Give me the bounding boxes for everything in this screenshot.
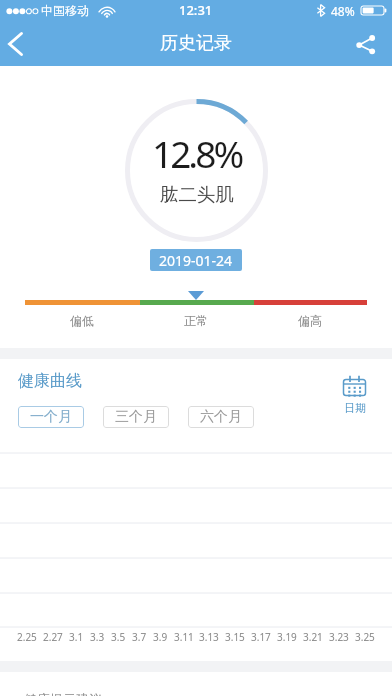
staticText: 3.1 (69, 630, 84, 644)
button[interactable]: 一个月 (18, 406, 84, 428)
staticText: 六个月 (200, 408, 242, 426)
staticText: 中国移动 (41, 3, 89, 18)
staticText: 3.17 (251, 630, 271, 644)
staticText: 3.19 (277, 630, 297, 644)
staticText: 48% (331, 3, 355, 19)
staticText: 3.9 (153, 630, 168, 644)
staticText: 三个月 (115, 408, 157, 426)
button[interactable]: 2019-01-24 (150, 249, 242, 271)
button[interactable]: 六个月 (188, 406, 254, 428)
staticText: 3.15 (225, 630, 245, 644)
staticText: 2019-01-24 (159, 251, 233, 270)
staticText: 健康提示建议 (24, 691, 102, 696)
staticText: 3.5 (111, 630, 126, 644)
staticText: 偏高 (253, 313, 367, 328)
staticText: 3.23 (329, 630, 349, 644)
staticText: 3.13 (199, 630, 219, 644)
staticText: 2.27 (43, 630, 63, 644)
staticText: 12.8% (152, 128, 242, 178)
staticText: 3.3 (90, 630, 105, 644)
staticText: 12:31 (179, 1, 213, 19)
button[interactable]: 三个月 (103, 406, 169, 428)
staticText: 2.25 (17, 630, 37, 644)
staticText: 3.21 (303, 630, 323, 644)
staticText: 历史记录 (160, 32, 232, 55)
staticText: 3.7 (132, 630, 147, 644)
button[interactable]: Date picker (336, 375, 373, 415)
button[interactable]: Share (346, 22, 392, 66)
staticText: 正常 (139, 313, 253, 328)
staticText: 3.11 (174, 630, 194, 644)
staticText: 日期 (344, 401, 366, 415)
staticText: 肱二头肌 (160, 183, 234, 206)
staticText: 健康曲线 (18, 371, 82, 391)
staticText: 一个月 (30, 408, 72, 426)
staticText: 3.25 (355, 630, 375, 644)
button[interactable]: Back (0, 22, 40, 66)
staticText: 偏低 (25, 313, 139, 328)
